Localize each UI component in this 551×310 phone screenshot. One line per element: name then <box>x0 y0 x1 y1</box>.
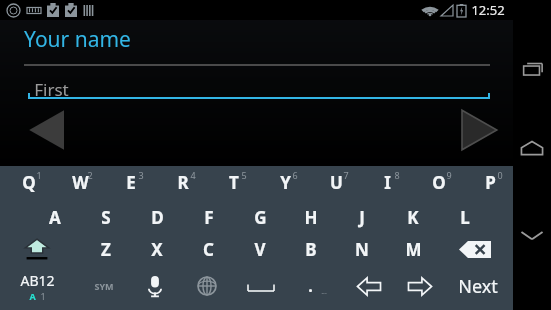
staticText: I <box>384 171 391 194</box>
staticText: U <box>330 171 343 194</box>
staticText: T <box>229 171 239 194</box>
staticText: SYM <box>94 280 114 292</box>
button[interactable]: B <box>286 234 336 264</box>
staticText: D <box>151 206 164 229</box>
button[interactable]: P <box>465 166 515 198</box>
staticText: R <box>177 171 189 194</box>
staticText: Next <box>458 274 498 299</box>
button[interactable]: Hide keyboard <box>513 215 551 255</box>
staticText: E <box>126 171 136 194</box>
button[interactable]: Change language <box>183 264 231 308</box>
button[interactable]: F <box>184 202 234 232</box>
button[interactable]: SYM <box>80 264 128 308</box>
button[interactable]: X <box>132 234 182 264</box>
staticText: B <box>305 238 317 261</box>
staticText: Q <box>22 171 36 194</box>
staticText: K <box>407 206 419 229</box>
staticText: 9 <box>446 169 452 181</box>
button[interactable]: Delete <box>448 234 502 264</box>
button[interactable]: Previous field <box>345 264 393 308</box>
staticText: 1 <box>36 169 42 181</box>
button[interactable]: D <box>132 202 182 232</box>
staticText: O <box>432 171 446 194</box>
button[interactable]: I <box>362 166 412 198</box>
staticText: First <box>34 78 69 101</box>
staticText: A <box>49 206 61 229</box>
staticText: 3 <box>138 169 144 181</box>
button[interactable]: Home <box>513 128 551 168</box>
staticText: V <box>254 238 266 261</box>
staticText: J <box>359 206 365 229</box>
button[interactable]: T <box>209 166 259 198</box>
staticText: Z <box>101 238 111 261</box>
staticText: L <box>460 206 470 229</box>
button[interactable]: Next <box>444 104 504 156</box>
button[interactable]: C <box>183 234 233 264</box>
button[interactable]: M <box>388 234 438 264</box>
button[interactable]: AB12 <box>6 264 68 308</box>
staticText: C <box>203 238 214 261</box>
staticText: 5 <box>241 169 247 181</box>
staticText: 2 <box>87 169 93 181</box>
staticText: F <box>204 206 214 229</box>
staticText: 4 <box>190 169 196 181</box>
button[interactable]: W <box>55 166 105 198</box>
button[interactable]: Next field <box>396 264 444 308</box>
staticText: G <box>254 206 267 229</box>
button[interactable]: V <box>235 234 285 264</box>
button[interactable]: Next <box>447 264 509 308</box>
staticText: W <box>72 171 89 194</box>
button[interactable]: . <box>292 264 342 308</box>
button[interactable]: A <box>30 202 80 232</box>
staticText: Y <box>280 171 291 194</box>
button[interactable]: L <box>440 202 490 232</box>
staticText: AB12 <box>20 271 55 290</box>
button[interactable]: H <box>286 202 336 232</box>
button[interactable]: K <box>388 202 438 232</box>
button[interactable]: U <box>311 166 361 198</box>
button[interactable]: Z <box>81 234 131 264</box>
button[interactable]: Recent apps <box>513 50 551 90</box>
staticText: M <box>405 238 422 261</box>
staticText: H <box>304 206 318 229</box>
staticText: . <box>308 275 313 297</box>
staticText: 0 <box>497 169 503 181</box>
staticText: N <box>355 238 369 261</box>
button[interactable]: Back <box>22 104 82 156</box>
staticText: 1 <box>40 290 46 302</box>
staticText: 7 <box>343 169 349 181</box>
button[interactable]: E <box>106 166 156 198</box>
button[interactable]: N <box>337 234 387 264</box>
button[interactable]: Y <box>260 166 310 198</box>
staticText: 8 <box>394 169 400 181</box>
button[interactable]: Q <box>4 166 54 198</box>
button[interactable]: G <box>235 202 285 232</box>
button[interactable]: Voice input <box>131 264 179 308</box>
button[interactable]: Space <box>231 264 291 308</box>
staticText: Your name <box>24 25 131 54</box>
staticText: 12:52 <box>471 1 505 19</box>
staticText: ... <box>321 287 327 297</box>
staticText: S <box>101 206 111 229</box>
staticText: X <box>151 238 163 261</box>
staticText: A <box>29 290 36 302</box>
staticText: P <box>485 171 496 194</box>
button[interactable]: J <box>337 202 387 232</box>
button[interactable]: R <box>158 166 208 198</box>
staticText: 6 <box>292 169 298 181</box>
button[interactable]: Shift <box>12 234 62 264</box>
button[interactable]: S <box>81 202 131 232</box>
button[interactable]: O <box>414 166 464 198</box>
